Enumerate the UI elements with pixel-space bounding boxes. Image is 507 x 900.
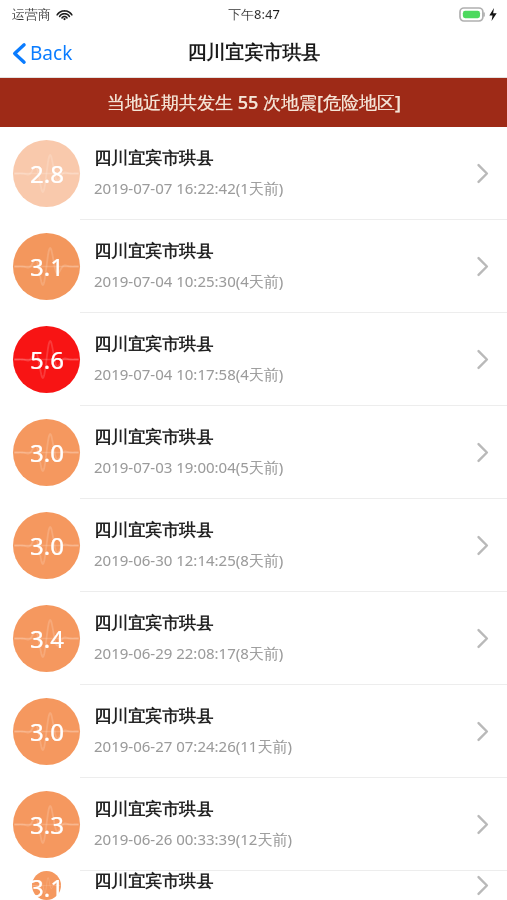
staticText: 3.4 [30,622,64,655]
staticText: 四川宜宾市珙县 [94,148,213,169]
other: Details [457,778,507,870]
staticText: 四川宜宾市珙县 [187,41,320,65]
staticText: 3.0 [30,715,64,748]
button[interactable]: 2.8 [0,127,507,219]
staticText: Back [30,40,73,66]
staticText: 四川宜宾市珙县 [94,613,213,634]
other: Details [457,220,507,312]
staticText: 5.6 [30,343,64,376]
other: Details [457,406,507,498]
staticText: 2019-07-03 19:00:04(5天前) [94,457,284,477]
button[interactable]: 3.1 [0,220,507,312]
other: Details [457,127,507,219]
staticText: 2019-06-26 00:33:39(12天前) [94,829,292,849]
button[interactable]: 5.6 [0,313,507,405]
staticText: 2019-07-04 10:17:58(4天前) [94,364,284,384]
staticText: 3.3 [30,808,64,841]
staticText: 四川宜宾市珙县 [94,706,213,727]
button[interactable]: 3.3 [0,778,507,870]
staticText: 四川宜宾市珙县 [94,520,213,541]
button[interactable]: 3.0 [0,685,507,777]
staticText: 2019-07-07 16:22:42(1天前) [94,178,284,198]
staticText: 四川宜宾市珙县 [94,241,213,262]
staticText: 2019-07-04 10:25:30(4天前) [94,271,284,291]
other: Details [457,685,507,777]
staticText: 2.8 [30,157,64,190]
staticText: 2019-06-29 22:08:17(8天前) [94,643,284,663]
button[interactable]: 3.0 [0,406,507,498]
button[interactable]: Back [0,28,83,78]
staticText: 3.1 [30,871,64,900]
staticText: 四川宜宾市珙县 [94,799,213,820]
staticText: 下午8:47 [228,5,280,23]
other: Details [457,499,507,591]
staticText: 四川宜宾市珙县 [94,334,213,355]
staticText: 四川宜宾市珙县 [94,427,213,448]
staticText: 3.0 [30,436,64,469]
other: Details [457,871,507,900]
staticText: 运营商 [12,6,51,22]
button[interactable]: 3.0 [0,499,507,591]
other: Details [457,313,507,405]
other: Details [457,592,507,684]
staticText: 当地近期共发生 55 次地震[危险地区] [107,90,401,115]
button[interactable]: 3.1 [0,871,507,900]
staticText: 2019-06-30 12:14:25(8天前) [94,550,284,570]
button[interactable]: 3.4 [0,592,507,684]
staticText: 四川宜宾市珙县 [94,871,213,892]
staticText: 3.0 [30,529,64,562]
staticText: 3.1 [30,250,64,283]
staticText: 2019-06-27 07:24:26(11天前) [94,736,292,756]
